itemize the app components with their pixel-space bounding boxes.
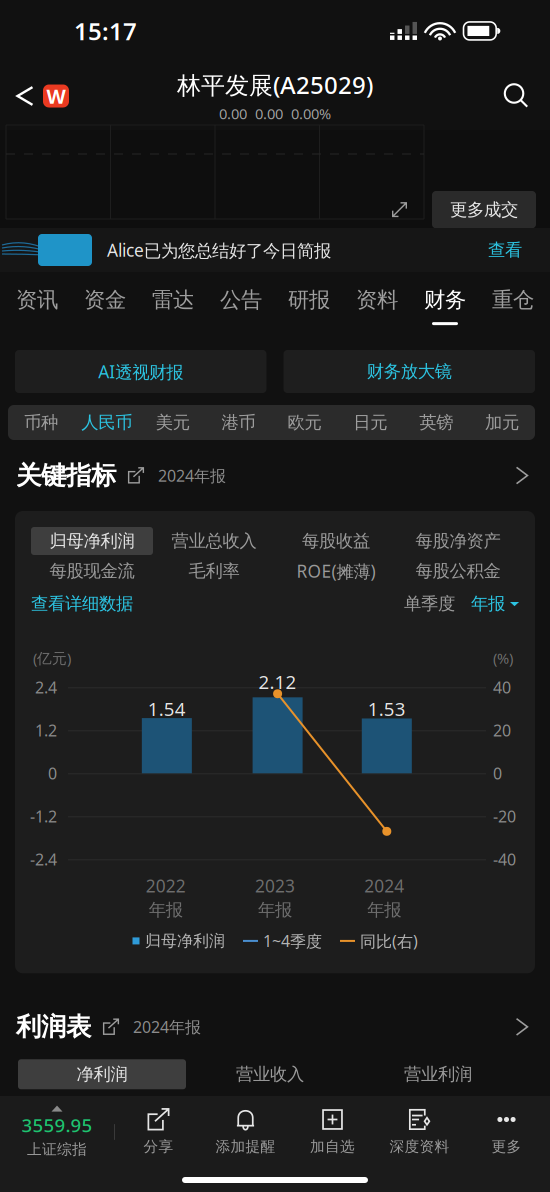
staticText: 关键指标 <box>16 460 116 491</box>
button[interactable]: ROE(摊薄) <box>275 557 397 585</box>
staticText: AI透视财报 <box>98 360 183 383</box>
staticText: 0 <box>493 763 502 784</box>
button[interactable]: 资讯 <box>3 272 71 340</box>
staticText: 重仓 <box>492 287 534 313</box>
button[interactable]: 每股净资产 <box>397 527 519 555</box>
staticText: 每股净资产 <box>415 530 500 552</box>
staticText: 资金 <box>84 287 126 313</box>
button[interactable]: 港币 <box>206 405 271 440</box>
staticText: 净利润 <box>76 1064 127 1085</box>
staticText: -40 <box>493 849 516 870</box>
staticText: 雷达 <box>152 287 194 313</box>
button[interactable]: 欧元 <box>271 405 337 440</box>
staticText: 日元 <box>353 412 387 433</box>
staticText: -1.2 <box>30 806 57 827</box>
staticText: 添加提醒 <box>215 1137 275 1155</box>
staticText: 2024年报 <box>133 1016 201 1037</box>
staticText: (亿元) <box>33 648 71 668</box>
button[interactable]: 资料 <box>343 272 411 340</box>
button[interactable]: 更多 <box>514 1015 530 1039</box>
button[interactable]: 每股现金流 <box>31 557 153 585</box>
staticText: 公告 <box>220 287 262 313</box>
staticText: 欧元 <box>287 412 321 433</box>
staticText: 2.4 <box>35 677 57 698</box>
staticText: 人民币 <box>81 412 132 433</box>
button[interactable]: 分享 <box>103 1019 119 1035</box>
button[interactable]: 3559.95 <box>0 1106 114 1158</box>
button[interactable]: 美元 <box>140 405 206 440</box>
button[interactable]: 币种 <box>8 405 74 440</box>
staticText: 归母净利润 <box>145 931 225 951</box>
button[interactable]: 全屏 <box>391 201 408 218</box>
staticText: 1.53 <box>368 696 406 721</box>
staticText: 资讯 <box>16 287 58 313</box>
button[interactable]: 年报 <box>455 593 519 614</box>
staticText: 年报 <box>471 593 505 614</box>
button[interactable]: 重仓 <box>479 272 547 340</box>
staticText: 币种 <box>24 412 58 433</box>
staticText: 0 <box>48 763 57 784</box>
button[interactable]: 营业总收入 <box>153 527 275 555</box>
staticText: 每股公积金 <box>415 560 500 582</box>
button[interactable]: 研报 <box>275 272 343 340</box>
staticText: 上证综指 <box>27 1140 87 1158</box>
staticText: 加元 <box>485 412 519 433</box>
button[interactable]: AI透视财报 <box>15 350 266 393</box>
button[interactable]: 查看详细数据 <box>31 593 133 614</box>
button[interactable]: 雷达 <box>139 272 207 340</box>
button[interactable]: 更多 <box>463 1108 550 1155</box>
staticText: 财务放大镜 <box>367 361 452 382</box>
staticText: 1~4季度 <box>263 930 322 951</box>
staticText: 40 <box>493 677 511 698</box>
button[interactable]: 分享 <box>115 1108 202 1155</box>
staticText: 资料 <box>356 287 398 313</box>
staticText: (%) <box>493 648 513 668</box>
button[interactable]: 日元 <box>337 405 403 440</box>
button[interactable]: Alice已为您总结好了今日简报 <box>0 228 550 272</box>
staticText: 营业总收入 <box>171 530 256 552</box>
button[interactable]: 单季度 <box>404 593 455 614</box>
button[interactable]: 财务 <box>411 272 479 340</box>
button[interactable]: 应用 <box>43 84 69 107</box>
staticText: 2024年报 <box>158 465 226 486</box>
button[interactable]: 营业利润 <box>354 1059 522 1089</box>
button[interactable]: 深度资料 <box>376 1108 463 1155</box>
button[interactable]: 每股公积金 <box>397 557 519 585</box>
button[interactable]: 每股收益 <box>275 527 397 555</box>
staticText: ROE(摊薄) <box>296 559 375 582</box>
staticText: 年报 <box>149 899 183 921</box>
button[interactable]: 加自选 <box>289 1108 376 1155</box>
staticText: -2.4 <box>30 849 57 870</box>
staticText: 研报 <box>288 287 330 313</box>
staticText: 1.2 <box>35 720 57 741</box>
staticText: 查看详细数据 <box>31 593 133 614</box>
staticText: 年报 <box>258 899 292 921</box>
button[interactable]: 资金 <box>71 272 139 340</box>
staticText: 英镑 <box>419 412 453 433</box>
staticText: 归母净利润 <box>49 530 134 552</box>
button[interactable]: 公告 <box>207 272 275 340</box>
staticText: 年报 <box>367 899 401 921</box>
button[interactable]: 更多 <box>514 463 530 487</box>
staticText: 每股现金流 <box>49 560 134 582</box>
button[interactable]: 毛利率 <box>153 557 275 585</box>
button[interactable]: 返回 <box>14 83 36 109</box>
button[interactable]: 英镑 <box>403 405 469 440</box>
staticText: 财务 <box>424 287 466 313</box>
button[interactable]: 搜索 <box>502 82 530 110</box>
button[interactable]: 人民币 <box>74 405 140 440</box>
staticText: 0.00 0.00 0.00% <box>219 104 331 123</box>
button[interactable]: 财务放大镜 <box>283 350 535 393</box>
button[interactable]: 添加提醒 <box>202 1108 289 1155</box>
button[interactable]: 归母净利润 <box>31 527 153 555</box>
staticText: 3559.95 <box>21 1113 92 1137</box>
staticText: 2.12 <box>259 669 297 694</box>
button[interactable]: 分享 <box>128 467 144 483</box>
staticText: W <box>46 83 65 109</box>
button[interactable]: 加元 <box>469 405 535 440</box>
button[interactable]: 营业收入 <box>186 1059 354 1089</box>
staticText: 15:17 <box>74 15 137 47</box>
staticText: 2023 <box>255 874 295 897</box>
button[interactable]: 净利润 <box>18 1059 186 1089</box>
button[interactable]: 更多成交 <box>432 191 536 228</box>
